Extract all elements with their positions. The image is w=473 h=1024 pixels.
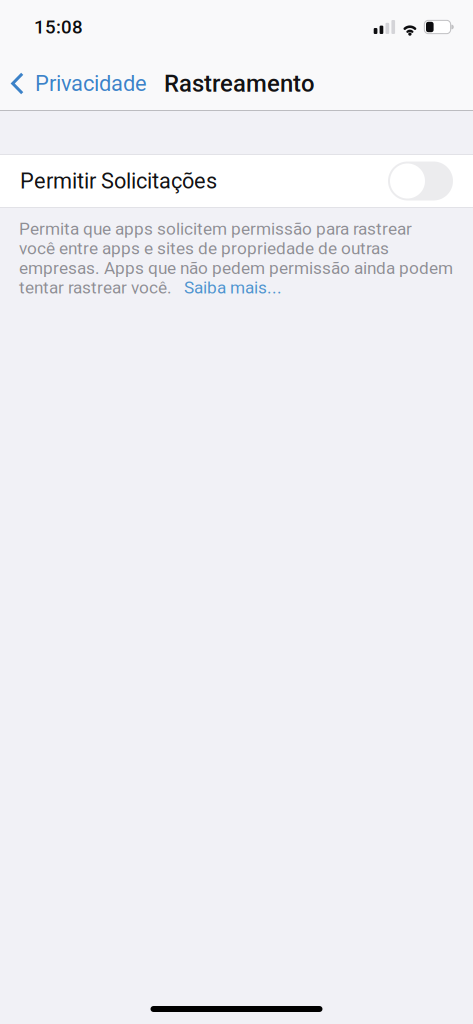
staticText: Permitir Solicitações [20, 168, 217, 194]
button[interactable]: Permitir Solicitações [0, 155, 473, 207]
staticText: tentar rastrear você. [19, 277, 176, 298]
button[interactable]: Saiba mais... [176, 277, 282, 298]
staticText: 15:08 [34, 16, 83, 38]
button[interactable]: Privacidade [0, 48, 155, 110]
staticText: Permita que apps solicitem permissão par… [19, 219, 412, 239]
staticText: empresas. Apps que não pedem permissão a… [19, 258, 453, 278]
staticText: Saiba mais... [184, 277, 282, 298]
staticText: Privacidade [35, 71, 147, 96]
staticText: você entre apps e sites de propriedade d… [19, 238, 389, 258]
staticText: Rastreamento [164, 69, 315, 97]
